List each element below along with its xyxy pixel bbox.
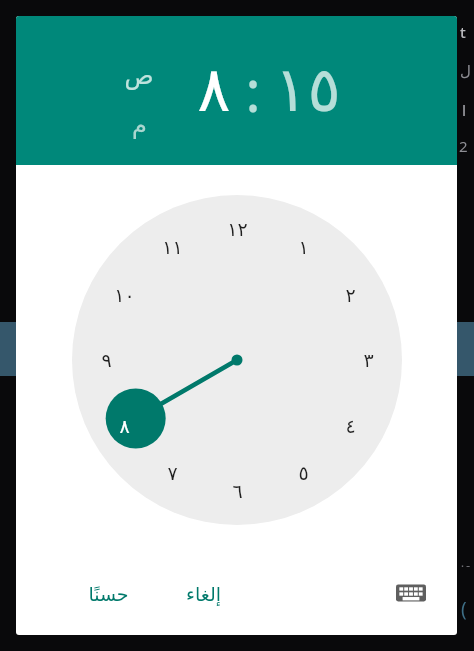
staticText: t — [460, 22, 466, 42]
button[interactable]: ٨ — [183, 44, 245, 134]
button[interactable]: م — [119, 106, 159, 144]
staticText: ٩ — [101, 349, 112, 371]
button[interactable]: حسنًا — [68, 571, 148, 617]
staticText: l — [462, 100, 467, 120]
staticText: ١٥ — [274, 53, 341, 125]
staticText: ٢ — [345, 284, 356, 306]
staticText: 2 — [459, 136, 468, 156]
staticText: ٨ — [119, 415, 130, 437]
staticText: ٥ — [298, 462, 309, 484]
staticText: : — [245, 50, 261, 129]
staticText: ١٠ — [114, 284, 135, 306]
staticText: ١ — [298, 236, 309, 258]
staticText: ١١ — [162, 236, 183, 258]
staticText: ل — [460, 62, 471, 79]
staticText: م — [132, 111, 147, 139]
staticText: حسنًا — [88, 583, 129, 605]
staticText: ٠- — [459, 556, 471, 574]
staticText: ص — [124, 62, 154, 90]
staticText: ٨ — [197, 53, 231, 125]
button[interactable]: ١٥ — [261, 44, 353, 134]
staticText: ١٢ — [227, 218, 248, 240]
button[interactable]: ١ — [72, 195, 402, 525]
button[interactable]: ص — [119, 57, 159, 95]
staticText: ٤ — [345, 415, 356, 437]
button[interactable]: Switch to text input mode — [387, 569, 435, 617]
staticText: ( — [461, 596, 467, 622]
staticText: إلغاء — [186, 583, 221, 605]
button[interactable]: إلغاء — [166, 571, 240, 617]
staticText: ٣ — [363, 349, 374, 371]
staticText: ٦ — [232, 480, 243, 502]
staticText: ٧ — [167, 462, 178, 484]
